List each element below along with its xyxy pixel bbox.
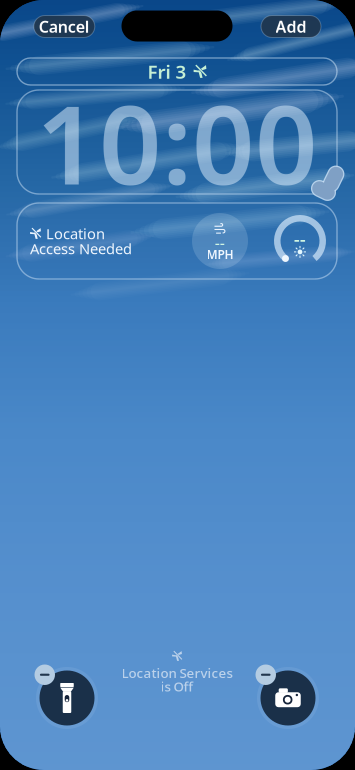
button[interactable]: Remove Flashlight control	[36, 667, 98, 729]
staticText: is Off	[160, 677, 193, 695]
staticText: Location	[46, 224, 105, 243]
button[interactable]: Cancel	[34, 15, 95, 37]
staticText: --	[215, 233, 225, 252]
button[interactable]: Add	[261, 15, 321, 37]
staticText: 10:00	[36, 69, 318, 215]
staticText: MPH	[206, 246, 233, 262]
staticText: --	[294, 227, 306, 250]
staticText: Location Services	[121, 664, 232, 682]
staticText: Access Needed	[30, 239, 132, 258]
staticText: Add	[275, 16, 306, 37]
staticText: Fri 3	[147, 59, 186, 84]
staticText: Cancel	[39, 16, 90, 37]
button[interactable]: Remove Camera control	[257, 667, 319, 729]
